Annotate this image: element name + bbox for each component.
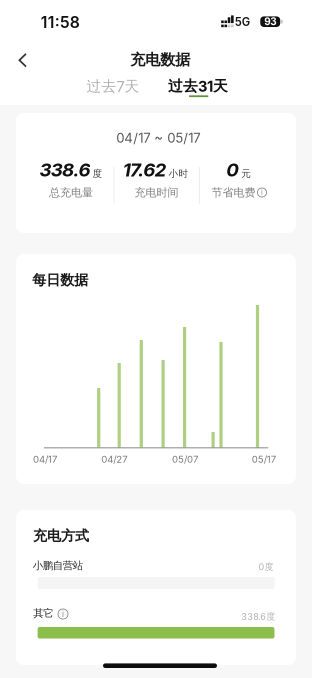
- button[interactable]: 其它说明: [58, 609, 68, 619]
- staticText: 过去7天: [86, 77, 139, 96]
- staticText: 其它: [33, 607, 53, 620]
- staticText: 338.6度: [241, 611, 275, 622]
- staticText: 充电方式: [33, 527, 89, 545]
- staticText: 04/17: [33, 453, 57, 465]
- staticText: 小时: [168, 167, 188, 179]
- staticText: 04/17 ~ 05/17: [116, 130, 200, 146]
- staticText: 度: [92, 167, 102, 179]
- staticText: 05/17: [252, 453, 276, 465]
- staticText: 节省电费: [211, 186, 255, 199]
- button[interactable]: 过去31天: [162, 73, 234, 99]
- staticText: 338.6: [40, 158, 90, 181]
- staticText: i: [261, 188, 263, 197]
- staticText: 04/27: [101, 453, 127, 465]
- staticText: 元: [241, 167, 251, 179]
- staticText: 11:58: [41, 13, 80, 32]
- staticText: 5G: [235, 15, 250, 29]
- staticText: 小鹏自营站: [33, 559, 83, 572]
- staticText: 0度: [258, 561, 273, 572]
- staticText: 每日数据: [32, 271, 88, 289]
- staticText: 05/07: [172, 453, 198, 465]
- button[interactable]: 过去7天: [78, 73, 147, 100]
- staticText: 0: [226, 158, 239, 181]
- button[interactable]: Back: [8, 43, 38, 78]
- staticText: 充电时间: [134, 186, 178, 199]
- button[interactable]: 节省电费说明: [257, 188, 266, 197]
- staticText: 93: [264, 16, 276, 28]
- staticText: 充电数据: [130, 50, 190, 69]
- staticText: 过去31天: [168, 77, 228, 95]
- staticText: 17.62: [123, 158, 166, 181]
- staticText: 总充电量: [49, 186, 93, 199]
- staticText: i: [62, 609, 64, 619]
